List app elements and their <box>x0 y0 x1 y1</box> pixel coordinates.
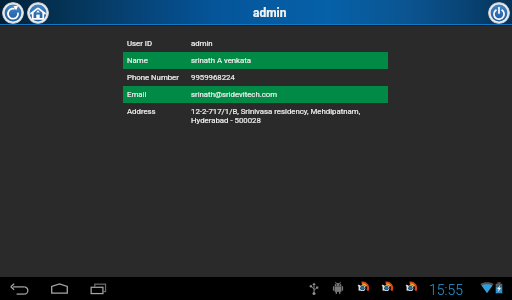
staticText: srinath A venkata <box>191 56 252 65</box>
staticText: admin <box>191 39 213 48</box>
staticText: 15:55 <box>429 282 464 298</box>
staticText: srinath@sridevitech.com <box>191 90 278 99</box>
button[interactable]: Recents <box>90 277 109 300</box>
staticText: Email <box>127 90 191 99</box>
button[interactable]: Home <box>50 277 69 300</box>
staticText: Phone Number <box>127 73 191 82</box>
button[interactable]: User ID <box>123 35 388 52</box>
staticText: 12-2-717/1/B, Srinivasa residency, Mehdi… <box>191 107 361 125</box>
button[interactable]: Refresh <box>2 2 24 24</box>
button[interactable]: Home <box>27 2 49 24</box>
button[interactable]: Phone Number <box>123 69 388 86</box>
button[interactable]: Name <box>123 52 388 69</box>
button[interactable]: Back <box>10 277 29 300</box>
staticText: Address <box>127 107 191 116</box>
staticText: 9959968224 <box>191 73 235 82</box>
button[interactable]: Address <box>123 103 388 129</box>
staticText: admin <box>253 6 287 20</box>
button[interactable]: Email <box>123 86 388 103</box>
button[interactable]: Power <box>488 2 510 24</box>
staticText: Name <box>127 56 191 65</box>
staticText: User ID <box>127 39 191 48</box>
